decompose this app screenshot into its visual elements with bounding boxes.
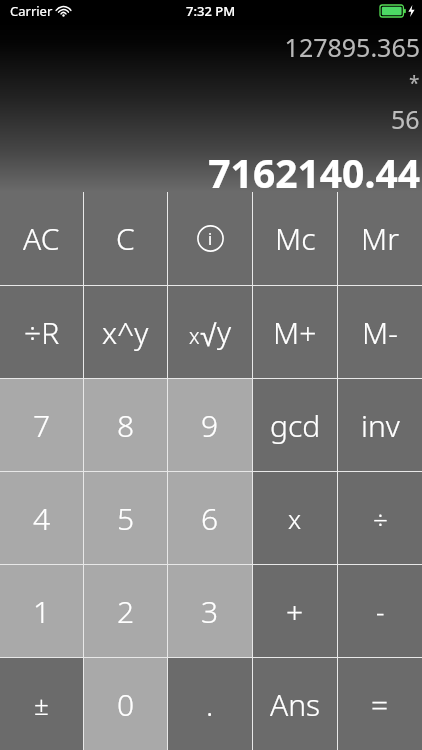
- button[interactable]: 3: [168, 565, 252, 657]
- button[interactable]: x: [168, 286, 252, 378]
- staticText: =: [371, 684, 389, 725]
- staticText: √: [200, 319, 217, 353]
- button[interactable]: gcd: [253, 379, 337, 471]
- staticText: 56: [391, 102, 420, 136]
- staticText: 2: [117, 591, 135, 632]
- button[interactable]: x^y: [84, 286, 167, 378]
- staticText: AC: [23, 218, 60, 259]
- button[interactable]: inv: [338, 379, 422, 471]
- staticText: y: [217, 311, 232, 352]
- button[interactable]: 5: [84, 472, 167, 564]
- staticText: x: [189, 322, 200, 351]
- staticText: +: [286, 591, 304, 632]
- staticText: .: [206, 684, 214, 725]
- button[interactable]: AC: [0, 192, 83, 285]
- staticText: gcd: [270, 405, 321, 446]
- staticText: 5: [117, 498, 135, 539]
- button[interactable]: 2: [84, 565, 167, 657]
- staticText: inv: [361, 405, 400, 446]
- button[interactable]: 1: [0, 565, 83, 657]
- staticText: 3: [201, 591, 219, 632]
- staticText: x: [288, 501, 302, 536]
- button[interactable]: =: [338, 658, 422, 750]
- staticText: 0: [117, 684, 135, 725]
- staticText: 4: [33, 498, 51, 539]
- staticText: Carrier: [10, 2, 53, 20]
- button[interactable]: 7: [0, 379, 83, 471]
- staticText: ÷: [373, 501, 388, 536]
- button[interactable]: 4: [0, 472, 83, 564]
- staticText: -: [376, 594, 385, 629]
- staticText: 6: [201, 498, 219, 539]
- staticText: C: [116, 218, 135, 259]
- staticText: Mr: [361, 218, 399, 259]
- button[interactable]: x: [253, 472, 337, 564]
- staticText: Ans: [270, 684, 321, 725]
- staticText: 7: [33, 405, 51, 446]
- staticText: M-: [362, 312, 398, 353]
- staticText: 127895.365: [284, 30, 420, 64]
- button[interactable]: 8: [84, 379, 167, 471]
- staticText: 9: [201, 405, 219, 446]
- button[interactable]: ÷R: [0, 286, 83, 378]
- button[interactable]: Info: [168, 192, 252, 285]
- button[interactable]: +: [253, 565, 337, 657]
- staticText: x^y: [102, 312, 149, 353]
- staticText: 7:32 PM: [186, 2, 236, 20]
- button[interactable]: Mr: [338, 192, 422, 285]
- staticText: 8: [117, 405, 135, 446]
- button[interactable]: .: [168, 658, 252, 750]
- staticText: ÷R: [24, 312, 60, 353]
- staticText: 7162140.44: [208, 146, 420, 192]
- staticText: M+: [273, 312, 317, 353]
- button[interactable]: 0: [84, 658, 167, 750]
- button[interactable]: -: [338, 565, 422, 657]
- button[interactable]: Ans: [253, 658, 337, 750]
- staticText: 1: [33, 591, 51, 632]
- button[interactable]: ÷: [338, 472, 422, 564]
- staticText: ±: [34, 687, 49, 722]
- button[interactable]: M-: [338, 286, 422, 378]
- button[interactable]: 9: [168, 379, 252, 471]
- button[interactable]: M+: [253, 286, 337, 378]
- staticText: i: [208, 228, 213, 250]
- button[interactable]: ±: [0, 658, 83, 750]
- button[interactable]: Mc: [253, 192, 337, 285]
- staticText: Mc: [275, 218, 316, 259]
- button[interactable]: 6: [168, 472, 252, 564]
- staticText: *: [409, 70, 420, 96]
- button[interactable]: C: [84, 192, 167, 285]
